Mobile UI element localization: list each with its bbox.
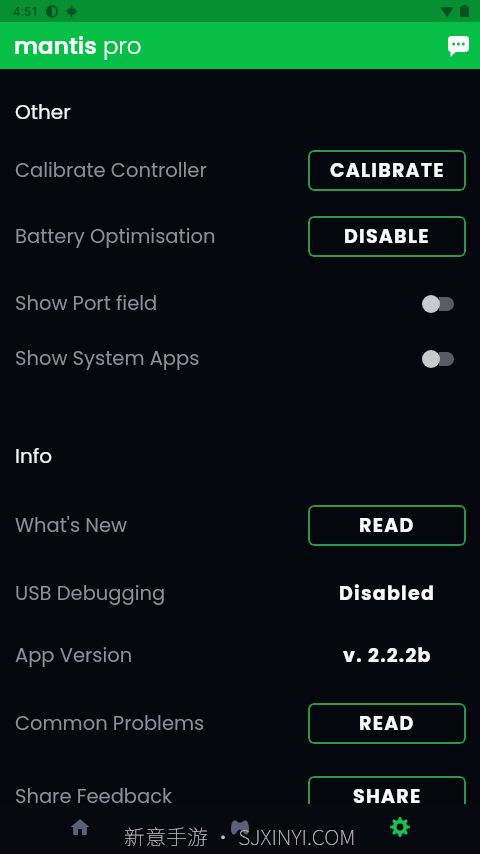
staticText: READ — [359, 710, 415, 737]
button[interactable]: Home — [0, 804, 160, 854]
button[interactable]: SHARE — [308, 776, 466, 817]
staticText: Show Port field — [15, 290, 308, 317]
button[interactable]: DISABLE — [308, 216, 466, 257]
staticText: SHARE — [353, 783, 422, 810]
button[interactable]: Chat support — [436, 24, 480, 68]
staticText: Other — [15, 98, 71, 126]
button[interactable]: READ — [308, 703, 466, 744]
staticText: 4:51 — [13, 4, 39, 19]
button[interactable]: Show Port field — [0, 281, 480, 325]
staticText: READ — [359, 512, 415, 539]
staticText: v. 2.2.2b — [343, 642, 432, 669]
staticText: Common Problems — [15, 710, 308, 737]
button[interactable]: READ — [308, 505, 466, 546]
button[interactable]: Settings — [320, 804, 480, 854]
staticText: Share Feedback — [15, 783, 308, 810]
staticText: Info — [15, 442, 53, 470]
staticText: Show System Apps — [15, 345, 308, 372]
staticText: pro — [103, 30, 142, 62]
staticText: 新意手游 · SJXINYI.COM — [124, 821, 356, 851]
button[interactable]: CALIBRATE — [308, 150, 466, 191]
staticText: Battery Optimisation — [15, 223, 308, 250]
staticText: App Version — [15, 642, 308, 669]
staticText: Calibrate Controller — [15, 157, 308, 184]
staticText: What's New — [15, 512, 308, 539]
staticText: CALIBRATE — [330, 157, 445, 184]
staticText: DISABLE — [344, 223, 430, 250]
staticText: USB Debugging — [15, 580, 308, 607]
staticText: mantis — [14, 30, 97, 62]
button[interactable]: Devices — [160, 804, 320, 854]
staticText: Disabled — [339, 580, 436, 607]
button[interactable]: Show System Apps — [0, 336, 480, 380]
